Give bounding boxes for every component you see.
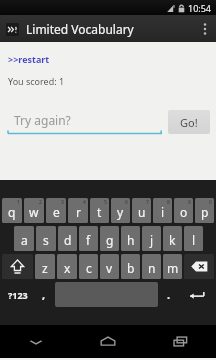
staticText: e [53, 204, 60, 220]
staticText: f [86, 232, 91, 248]
button[interactable]: 7 [132, 198, 151, 223]
staticText: v [106, 260, 113, 276]
staticText: Try again? [14, 112, 71, 128]
button[interactable]: b [121, 254, 140, 279]
staticText: j [150, 232, 154, 248]
staticText: z [42, 260, 48, 276]
staticText: d [64, 232, 72, 248]
button[interactable]: j [142, 226, 161, 251]
button[interactable]: k [163, 226, 182, 251]
button[interactable]: Go! [168, 110, 210, 134]
button[interactable]: More options [194, 15, 216, 42]
staticText: 1 [17, 199, 20, 206]
button[interactable]: x [57, 254, 77, 279]
button[interactable]: 0 [195, 198, 214, 223]
staticText: q [8, 204, 16, 220]
staticText: 10:54 [188, 2, 212, 14]
button[interactable]: l [184, 226, 203, 251]
staticText: ?123 [8, 289, 28, 301]
staticText: l [192, 232, 196, 248]
staticText: , [42, 287, 46, 302]
staticText: y [117, 204, 124, 220]
staticText: h [127, 232, 135, 248]
staticText: c [86, 260, 92, 276]
staticText: 7 [146, 199, 149, 206]
button[interactable]: >>restart [8, 52, 50, 66]
button[interactable]: 6 [111, 198, 130, 223]
staticText: >>restart [8, 53, 50, 65]
button[interactable]: g [100, 226, 119, 251]
button[interactable]: m [163, 254, 182, 279]
staticText: 6 [125, 199, 128, 206]
staticText: Limited Vocabulary [26, 21, 134, 37]
staticText: o [180, 204, 188, 220]
button[interactable]: 8 [153, 198, 172, 223]
button[interactable]: Home [72, 325, 144, 358]
button[interactable]: ?123 [1, 282, 34, 307]
button[interactable]: Shift [2, 254, 33, 279]
staticText: 3 [61, 199, 64, 206]
staticText: w [29, 204, 39, 220]
staticText: You scored: 1 [8, 75, 65, 87]
staticText: 4 [83, 199, 86, 206]
button[interactable]: z [35, 254, 55, 279]
staticText: k [169, 232, 176, 248]
button[interactable]: f [79, 226, 98, 251]
staticText: g [106, 232, 114, 248]
button[interactable]: Recent apps [144, 325, 216, 358]
button[interactable]: 2 [24, 198, 44, 223]
staticText: a [21, 232, 28, 248]
staticText: p [201, 204, 209, 220]
button[interactable]: 4 [68, 198, 88, 223]
staticText: n [148, 260, 156, 276]
button[interactable]: 5 [90, 198, 109, 223]
staticText: u [138, 204, 146, 220]
button[interactable]: Back [0, 325, 72, 358]
button[interactable]: c [79, 254, 98, 279]
button[interactable]: Try again? [8, 109, 162, 135]
staticText: x [64, 260, 71, 276]
staticText: t [97, 204, 102, 220]
button[interactable]: 3 [46, 198, 66, 223]
staticText: 9 [188, 199, 191, 206]
staticText: Go! [180, 115, 198, 130]
staticText: s [43, 232, 49, 248]
button[interactable]: h [121, 226, 140, 251]
staticText: 5 [104, 199, 107, 206]
staticText: m [167, 260, 179, 276]
button[interactable]: 9 [174, 198, 193, 223]
staticText: . [167, 287, 171, 302]
staticText: i [161, 204, 165, 220]
staticText: 0 [209, 199, 212, 206]
button[interactable]: . [159, 282, 179, 307]
button[interactable]: , [34, 282, 54, 307]
button[interactable]: s [36, 226, 56, 251]
button[interactable]: 1 [2, 198, 22, 223]
button[interactable]: d [58, 226, 77, 251]
button[interactable]: Delete [184, 254, 214, 279]
staticText: 2 [39, 199, 42, 206]
button[interactable]: Limited Vocabulary [0, 15, 216, 42]
staticText: 8 [167, 199, 170, 206]
button[interactable]: n [142, 254, 161, 279]
button[interactable]: Enter [179, 282, 215, 307]
button[interactable]: a [14, 226, 34, 251]
staticText: b [127, 260, 135, 276]
button[interactable]: v [100, 254, 119, 279]
staticText: r [76, 204, 81, 220]
